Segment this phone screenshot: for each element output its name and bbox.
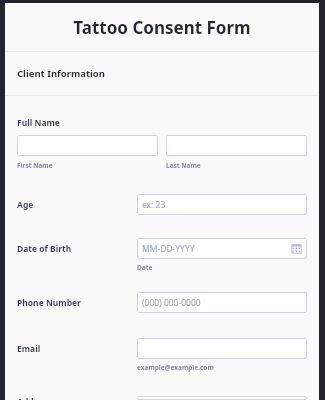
staticText: example@example.com	[137, 363, 214, 372]
button[interactable]: MM-DD-YYYY	[137, 238, 307, 259]
staticText: Address	[17, 396, 137, 400]
button[interactable]	[137, 396, 307, 400]
staticText: Phone Number	[17, 297, 137, 309]
staticText: Date	[137, 263, 153, 272]
button[interactable]: Pick date	[291, 243, 302, 254]
staticText: First Name	[17, 161, 53, 170]
button[interactable]: (000) 000-0000	[137, 292, 307, 313]
staticText: Age	[17, 199, 137, 211]
staticText: (000) 000-0000	[142, 297, 302, 309]
button[interactable]	[166, 135, 307, 156]
staticText: ex: 23	[142, 199, 302, 211]
button[interactable]: ex: 23	[137, 194, 307, 215]
staticText: Email	[17, 343, 137, 355]
button[interactable]	[137, 338, 307, 359]
staticText: Date of Birth	[17, 243, 137, 255]
button[interactable]	[17, 135, 158, 156]
staticText: Last Name	[166, 161, 201, 170]
staticText: Full Name	[17, 117, 60, 129]
staticText: Tattoo Consent Form	[73, 16, 251, 39]
staticText: Client Information	[17, 67, 105, 80]
staticText: MM-DD-YYYY	[142, 243, 291, 255]
